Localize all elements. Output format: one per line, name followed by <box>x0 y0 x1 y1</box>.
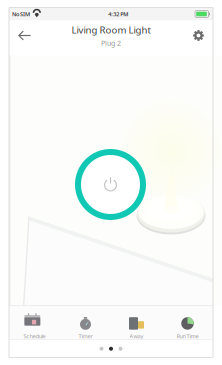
staticText: Away <box>129 332 143 340</box>
staticText: Schedule <box>23 332 45 340</box>
button[interactable]: Back <box>9 20 48 50</box>
staticText: Timer <box>78 332 92 340</box>
staticText: Plug 2 <box>101 38 121 48</box>
staticText: 4:32 PM <box>108 10 128 18</box>
staticText: Run Time <box>176 332 198 340</box>
button[interactable]: Timer <box>60 306 111 340</box>
button[interactable]: Power <box>75 149 146 220</box>
button[interactable]: Settings <box>174 20 213 50</box>
button[interactable]: Away <box>111 306 162 340</box>
button[interactable]: Schedule <box>9 306 60 340</box>
staticText: Living Room Light <box>71 23 150 36</box>
button[interactable]: Run Time <box>162 306 213 340</box>
staticText: No SIM <box>12 10 30 18</box>
